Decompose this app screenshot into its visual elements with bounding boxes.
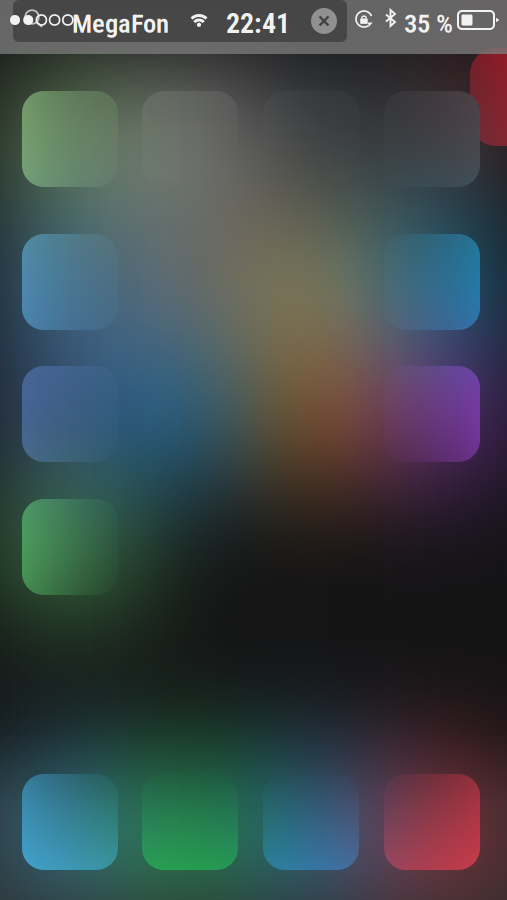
staticText: 35 % <box>404 8 453 39</box>
staticText: 22:41 <box>226 7 290 40</box>
button[interactable] <box>13 0 347 42</box>
button[interactable]: Clear search <box>311 8 337 34</box>
staticText: MegaFon <box>72 8 169 39</box>
